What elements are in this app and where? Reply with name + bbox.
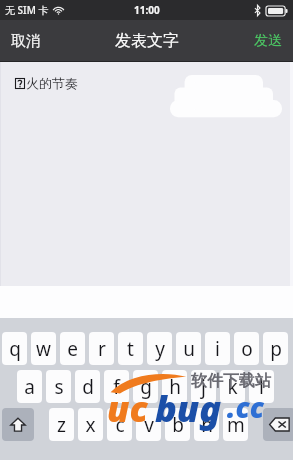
button[interactable]: b (165, 408, 190, 441)
button[interactable]: x (78, 408, 103, 441)
button[interactable]: p (263, 332, 288, 365)
staticText: h (169, 374, 181, 400)
staticText: k (227, 374, 238, 400)
staticText: 取消 (11, 32, 41, 51)
staticText: j (201, 374, 206, 400)
staticText: u (183, 336, 195, 362)
button[interactable]: 火的节奏 (0, 62, 293, 286)
staticText: 11:00 (134, 3, 160, 17)
staticText: w (36, 336, 51, 362)
staticText: e (67, 336, 78, 362)
button[interactable]: 取消 (0, 24, 52, 59)
button[interactable]: w (31, 332, 56, 365)
staticText: v (144, 412, 154, 438)
staticText: .cc (227, 388, 264, 426)
staticText: p (270, 336, 282, 362)
button[interactable]: z (49, 408, 74, 441)
button[interactable]: s (46, 370, 71, 403)
button[interactable]: u (176, 332, 201, 365)
staticText: g (140, 374, 152, 400)
staticText: m (227, 412, 245, 438)
button[interactable]: y (147, 332, 172, 365)
button[interactable]: c (107, 408, 132, 441)
staticText: n (201, 412, 213, 438)
button[interactable]: Shift (2, 408, 34, 441)
button[interactable]: f (104, 370, 129, 403)
button[interactable]: j (191, 370, 216, 403)
button[interactable]: v (136, 408, 161, 441)
button[interactable]: r (89, 332, 114, 365)
button[interactable]: l (249, 370, 274, 403)
staticText: bug (155, 384, 222, 433)
staticText: 发表文字 (115, 31, 179, 51)
button[interactable]: Backspace (263, 408, 293, 441)
staticText: x (85, 412, 96, 438)
button[interactable]: n (194, 408, 219, 441)
button[interactable]: g (133, 370, 158, 403)
button[interactable]: k (220, 370, 245, 403)
button[interactable]: e (60, 332, 85, 365)
staticText: l (259, 374, 264, 400)
button[interactable]: m (223, 408, 248, 441)
button[interactable]: a (17, 370, 42, 403)
staticText: uc (107, 384, 148, 433)
staticText: t (127, 336, 134, 362)
staticText: a (24, 374, 35, 400)
staticText: s (54, 374, 64, 400)
button[interactable]: q (2, 332, 27, 365)
staticText: c (115, 412, 125, 438)
staticText: 软件下载站 (191, 371, 271, 391)
button[interactable]: o (234, 332, 259, 365)
staticText: 火的节奏 (26, 75, 78, 91)
staticText: d (82, 374, 94, 400)
staticText: f (113, 374, 120, 400)
staticText: b (172, 412, 184, 438)
staticText: 无 SIM 卡 (5, 3, 49, 17)
staticText: y (155, 336, 165, 362)
button[interactable]: t (118, 332, 143, 365)
button[interactable]: h (162, 370, 187, 403)
staticText: q (9, 336, 21, 362)
staticText: i (215, 336, 220, 362)
button[interactable]: d (75, 370, 100, 403)
staticText: 发送 (254, 32, 282, 50)
button[interactable]: i (205, 332, 230, 365)
staticText: r (98, 336, 106, 362)
button[interactable]: 发送 (243, 24, 293, 58)
staticText: o (241, 336, 253, 362)
staticText: z (57, 412, 66, 438)
